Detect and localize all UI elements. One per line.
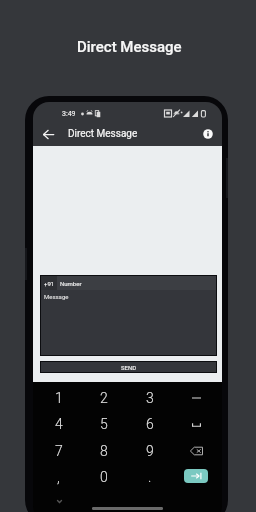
button[interactable]: , <box>36 464 81 490</box>
button[interactable]: Info <box>199 125 217 143</box>
button[interactable]: 2 <box>81 385 127 411</box>
button[interactable]: +91 <box>41 276 57 290</box>
button[interactable]: 8 <box>81 438 127 464</box>
staticText: 6 <box>146 416 154 432</box>
staticText: 9 <box>146 443 154 459</box>
staticText: 1 <box>55 390 63 406</box>
button[interactable]: 5 <box>81 411 127 437</box>
staticText: 3:49 <box>62 110 76 118</box>
staticText: SEND <box>121 364 137 371</box>
button[interactable]: 4 <box>36 411 81 437</box>
button[interactable]: Back <box>38 124 58 144</box>
staticText: 5 <box>100 416 108 432</box>
button[interactable]: Message <box>41 290 216 355</box>
button[interactable]: 0 <box>81 464 127 490</box>
button[interactable] <box>173 464 219 490</box>
staticText: 3 <box>146 390 154 406</box>
staticText: Direct Message <box>77 38 182 56</box>
staticText: 8 <box>100 443 108 459</box>
staticText: +91 <box>44 280 55 287</box>
staticText: Direct Message <box>68 128 138 140</box>
button[interactable]: 6 <box>127 411 173 437</box>
button[interactable]: 3 <box>127 385 173 411</box>
staticText: Message <box>44 293 69 300</box>
button[interactable]: Number <box>57 276 216 290</box>
button[interactable] <box>173 385 219 411</box>
button[interactable]: 1 <box>36 385 81 411</box>
button[interactable] <box>173 411 219 437</box>
button[interactable]: Hide keyboard <box>52 494 66 508</box>
button[interactable]: SEND <box>40 361 217 373</box>
staticText: , <box>57 469 60 485</box>
button[interactable]: 7 <box>36 438 81 464</box>
staticText: 4 <box>55 416 63 432</box>
button[interactable] <box>173 438 219 464</box>
staticText: 2 <box>100 390 108 406</box>
staticText: . <box>148 469 152 485</box>
button[interactable]: 9 <box>127 438 173 464</box>
staticText: 0 <box>100 469 108 485</box>
staticText: Number <box>60 280 82 287</box>
button[interactable]: . <box>127 464 173 490</box>
staticText: 7 <box>55 443 63 459</box>
